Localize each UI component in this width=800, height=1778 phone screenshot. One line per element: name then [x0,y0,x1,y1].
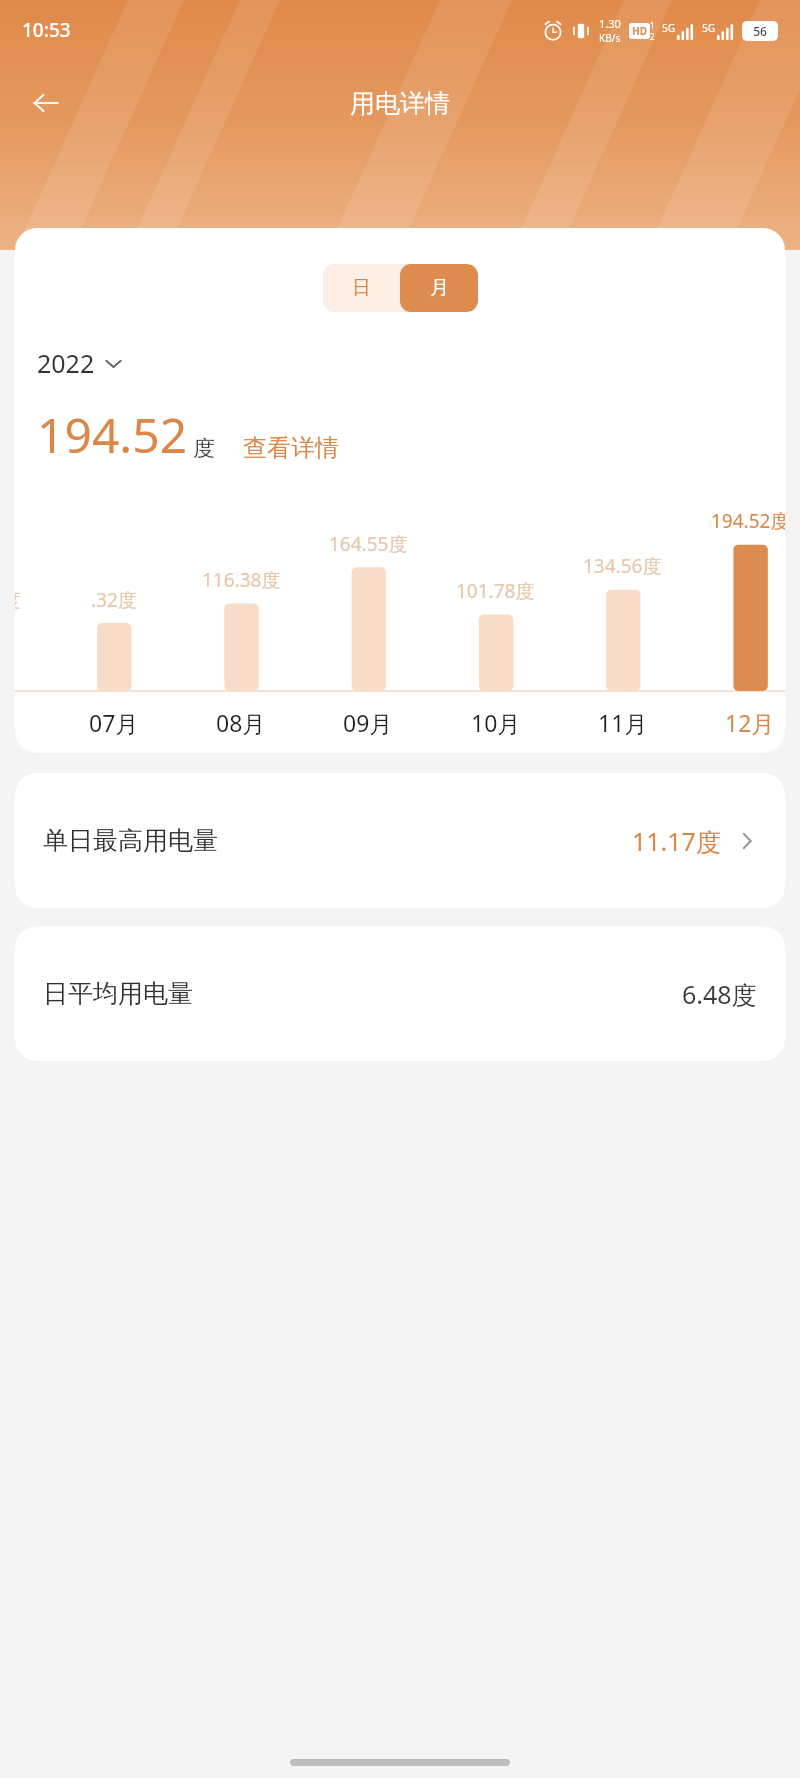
staticText: 10月 [471,707,521,738]
staticText: 116.38度 [202,567,281,593]
staticText: 2022 [37,346,95,380]
staticText: 56 [753,23,767,39]
staticText: 查看详情 [243,433,339,463]
staticText: 单日最高用电量 [43,825,218,856]
staticText: 11月 [598,707,648,738]
staticText: 5G [662,21,675,35]
staticText: 164.55度 [329,531,408,557]
staticText: 08月 [216,707,266,738]
staticText: 101.78度 [456,578,535,604]
staticText: 134.56度 [583,553,662,579]
staticText: 1.30 [599,16,621,31]
staticText: 5G [702,21,715,35]
button[interactable]: 日平均用电量 [15,926,785,1061]
staticText: HD [632,24,647,38]
staticText: 度 [193,435,215,463]
staticText: 1 [650,20,655,31]
staticText: 11.17度 [632,824,721,858]
staticText: 07月 [89,707,139,738]
staticText: 90.32度 [15,587,21,613]
button[interactable]: 2022 [35,344,125,382]
button[interactable]: Back [20,77,72,129]
staticText: KB/s [599,31,621,45]
staticText: 12月 [725,707,775,738]
staticText: 10:53 [22,17,71,43]
staticText: 日平均用电量 [43,978,193,1009]
button[interactable]: 日 [323,264,400,312]
staticText: 6.48度 [682,977,757,1011]
staticText: 日 [352,276,371,300]
staticText: 2 [650,31,655,42]
button[interactable]: 月 [400,264,478,312]
staticText: 用电详情 [350,88,450,119]
staticText: 月 [430,276,449,300]
button[interactable]: 查看详情 [241,431,341,465]
staticText: 09月 [343,707,393,738]
staticText: .32度 [91,587,137,613]
staticText: 194.52 [37,402,188,467]
button[interactable]: 单日最高用电量 [15,773,785,908]
staticText: 194.52度 [711,508,785,534]
